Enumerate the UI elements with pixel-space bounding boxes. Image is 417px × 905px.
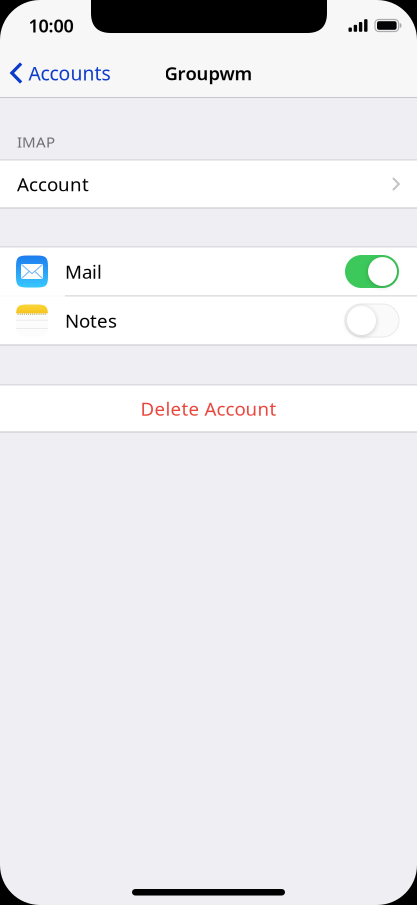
button[interactable]: Notes, off (345, 304, 399, 337)
button[interactable]: Mail, on (345, 255, 399, 288)
staticText: Notes (65, 308, 117, 333)
staticText: 10:00 (28, 13, 73, 38)
button[interactable]: Delete Account (0, 385, 417, 431)
staticText: IMAP (17, 131, 55, 152)
button[interactable]: Account (0, 160, 417, 207)
button[interactable]: Accounts (0, 49, 120, 97)
staticText: Mail (65, 259, 102, 284)
staticText: Account (17, 171, 89, 197)
staticText: Groupwm (164, 60, 252, 86)
staticText: Accounts (28, 60, 110, 86)
staticText: Delete Account (140, 396, 276, 421)
